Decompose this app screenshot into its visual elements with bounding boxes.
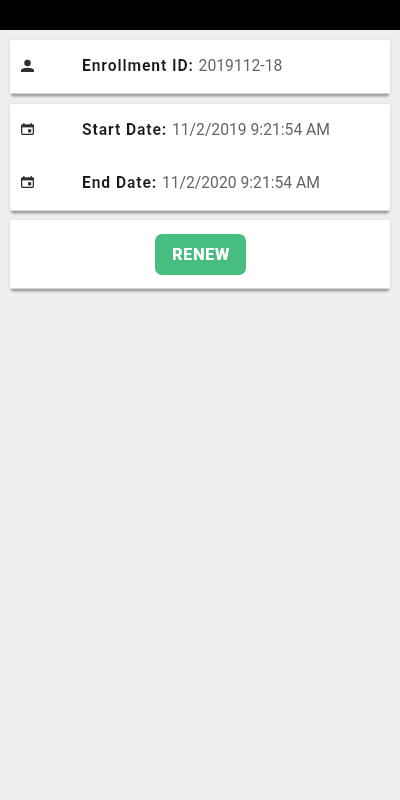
button[interactable]: RENEW xyxy=(155,234,246,275)
other: Person xyxy=(21,60,34,72)
staticText: Start Date: 11/2/2019 9:21:54 AM xyxy=(82,120,331,138)
other: Date xyxy=(21,123,34,135)
button[interactable]: Date xyxy=(10,157,390,210)
staticText: RENEW xyxy=(172,245,230,264)
button[interactable]: Date xyxy=(10,104,390,157)
other: Date xyxy=(21,176,34,188)
button[interactable]: Person xyxy=(10,40,390,93)
staticText: Enrollment ID: 2019112-18 xyxy=(82,56,283,74)
staticText: End Date: 11/2/2020 9:21:54 AM xyxy=(82,173,320,191)
